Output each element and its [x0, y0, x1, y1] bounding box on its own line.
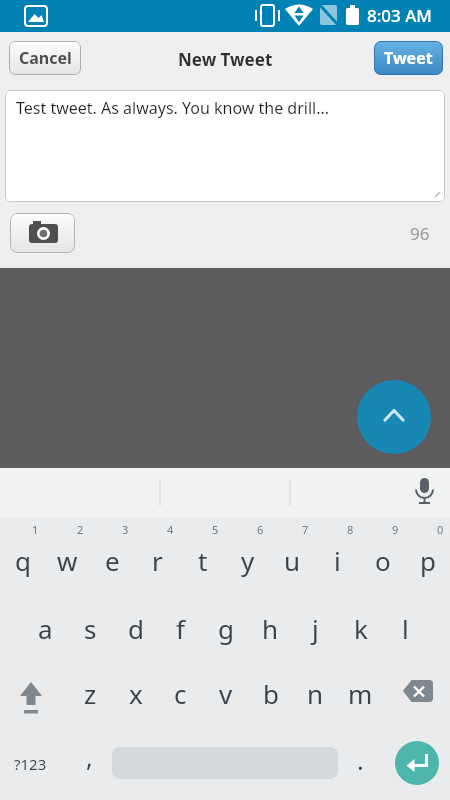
button[interactable]: ?123 — [0, 729, 60, 799]
staticText: 8 — [347, 522, 354, 537]
staticText: 6 — [257, 522, 264, 537]
staticText: 3 — [122, 522, 129, 537]
button[interactable] — [10, 213, 75, 253]
staticText: d — [128, 611, 144, 646]
staticText: 2 — [77, 522, 84, 537]
button[interactable]: h — [248, 593, 293, 663]
button[interactable]: d — [113, 593, 158, 663]
button[interactable]: v — [203, 658, 248, 728]
staticText: z — [84, 676, 97, 711]
staticText: o — [375, 543, 391, 578]
staticText: t — [198, 543, 208, 578]
button[interactable]: r — [135, 525, 180, 595]
staticText: f — [176, 611, 185, 646]
button[interactable]: w — [45, 525, 90, 595]
staticText: . — [357, 743, 364, 777]
staticText: r — [152, 543, 163, 578]
staticText: b — [263, 676, 279, 711]
staticText: k — [354, 611, 368, 646]
button[interactable]: s — [68, 593, 113, 663]
staticText: x — [129, 676, 143, 711]
staticText: u — [284, 543, 301, 578]
button[interactable]: e — [90, 525, 135, 595]
button[interactable]: g — [203, 593, 248, 663]
staticText: New Tweet — [178, 48, 273, 71]
staticText: c — [174, 676, 187, 711]
staticText: h — [262, 611, 279, 646]
button[interactable]: o — [360, 525, 405, 595]
staticText: 1 — [32, 522, 39, 537]
button[interactable]: m — [338, 658, 383, 728]
staticText: 4 — [167, 522, 174, 537]
staticText: n — [307, 676, 324, 711]
button[interactable]: u — [270, 525, 315, 595]
button[interactable]: Tweet — [374, 41, 443, 75]
button[interactable]: z — [68, 658, 113, 728]
staticText: l — [402, 611, 409, 646]
staticText: v — [219, 676, 233, 711]
button[interactable] — [395, 741, 439, 785]
button[interactable]: l — [383, 593, 428, 663]
button[interactable]: x — [113, 658, 158, 728]
button[interactable]: f — [158, 593, 203, 663]
button[interactable] — [357, 380, 431, 454]
button[interactable]: n — [293, 658, 338, 728]
staticText: y — [241, 543, 255, 578]
staticText: p — [420, 543, 436, 578]
button[interactable]: j — [293, 593, 338, 663]
staticText: e — [105, 543, 120, 578]
staticText: ?123 — [14, 754, 47, 774]
staticText: w — [57, 543, 78, 578]
button[interactable]: . — [338, 725, 383, 795]
staticText: 96 — [410, 222, 430, 245]
button[interactable] — [0, 659, 67, 729]
button[interactable]: a — [23, 593, 68, 663]
button[interactable]: q — [0, 525, 45, 595]
button[interactable]: y — [225, 525, 270, 595]
button[interactable]: i — [315, 525, 360, 595]
button[interactable]: b — [248, 658, 293, 728]
button[interactable]: Cancel — [9, 41, 81, 75]
staticText: 8:03 AM — [367, 4, 432, 27]
button[interactable]: t — [180, 525, 225, 595]
staticText: Tweet — [384, 47, 433, 69]
staticText: 7 — [302, 522, 309, 537]
staticText: g — [218, 611, 234, 646]
button[interactable]: k — [338, 593, 383, 663]
staticText: 5 — [212, 522, 219, 537]
staticText: j — [312, 611, 319, 646]
button[interactable]: , — [67, 722, 112, 792]
staticText: Cancel — [19, 47, 72, 69]
staticText: m — [348, 676, 373, 711]
button[interactable]: c — [158, 658, 203, 728]
staticText: a — [38, 611, 53, 646]
staticText: i — [334, 543, 341, 578]
staticText: Test tweet. As always. You know the dril… — [16, 97, 330, 119]
button[interactable]: p — [405, 525, 450, 595]
staticText: , — [86, 740, 93, 774]
staticText: 9 — [392, 522, 399, 537]
staticText: q — [15, 543, 31, 578]
button[interactable] — [383, 659, 450, 729]
staticText: s — [84, 611, 97, 646]
button[interactable]: Test tweet. As always. You know the dril… — [5, 90, 445, 202]
staticText: 0 — [437, 522, 444, 537]
